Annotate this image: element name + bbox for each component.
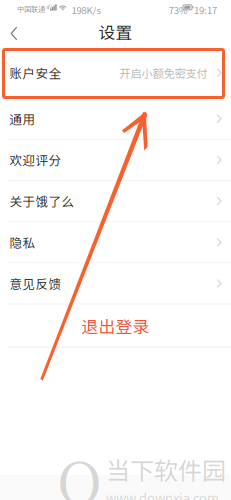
staticText: 73% — [169, 3, 188, 17]
staticText: 198K/s — [72, 3, 101, 17]
button[interactable]: 通用 — [0, 99, 231, 139]
staticText: 开启小额免密支付 — [119, 65, 207, 81]
button[interactable]: Back — [3, 15, 25, 48]
staticText: 设置 — [98, 19, 132, 44]
staticText: 关于饿了么 — [9, 192, 74, 210]
button[interactable]: 意见反馈 — [0, 263, 231, 304]
staticText: 欢迎评分 — [9, 151, 61, 169]
button[interactable]: 关于饿了么 — [0, 181, 231, 221]
staticText: 中国联通 — [17, 4, 45, 14]
staticText: www.downxia.com — [106, 488, 219, 500]
button[interactable]: 欢迎评分 — [0, 140, 231, 180]
staticText: 4ᴳ — [46, 3, 52, 11]
button[interactable]: 隐私 — [0, 222, 231, 262]
button[interactable]: 退出登录 — [0, 305, 231, 347]
staticText: 当下软件园 — [106, 452, 226, 487]
staticText: 意见反馈 — [9, 274, 61, 292]
staticText: 账户安全 — [9, 64, 61, 82]
staticText: 通用 — [9, 110, 35, 128]
staticText: 19:17 — [194, 3, 217, 17]
staticText: 退出登录 — [81, 313, 149, 338]
staticText: O — [57, 437, 102, 500]
button[interactable]: 账户安全 — [0, 48, 231, 98]
staticText: 隐私 — [9, 233, 35, 251]
